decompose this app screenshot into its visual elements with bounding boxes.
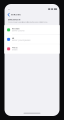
button[interactable]: Back (7, 13, 11, 17)
button[interactable]: Mail (4, 35, 59, 44)
staticText: Mail (12, 37, 14, 39)
staticText: Banners, Sounds, Badges (12, 39, 31, 41)
staticText: Banners, Sounds (12, 30, 25, 32)
staticText: Messages (12, 28, 20, 30)
button[interactable]: Messages (4, 25, 59, 34)
staticText: Photos (12, 47, 18, 49)
staticText: Choose how you want to be notified by th… (7, 21, 47, 23)
staticText: Notification Style (7, 19, 20, 21)
staticText: Badges (12, 49, 18, 51)
staticText: 9:41 (7, 8, 10, 10)
button[interactable]: Photos (4, 44, 59, 53)
staticText: Notifications (11, 14, 21, 16)
